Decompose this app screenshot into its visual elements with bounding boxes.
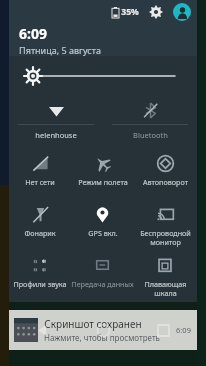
button[interactable]: Автоповорот — [134, 148, 197, 199]
button[interactable]: Home — [77, 310, 129, 350]
button[interactable]: Recents — [129, 310, 197, 350]
staticText: Нет сети — [25, 177, 55, 187]
staticText: helenhouse — [35, 130, 77, 140]
staticText: Нажмите, чтобы просмотреть — [44, 332, 160, 343]
staticText: Фонарик — [24, 228, 56, 238]
staticText: Передача данных — [71, 279, 134, 289]
staticText: Bluetooth — [133, 130, 168, 140]
button[interactable]: Settings — [148, 4, 164, 20]
staticText: Профили звука — [13, 279, 67, 289]
staticText: Режим полета — [78, 177, 128, 187]
button[interactable]: Back — [9, 310, 77, 350]
button[interactable]: User — [173, 3, 191, 21]
button[interactable]: Беспроводной монитор — [134, 199, 197, 250]
button[interactable]: Фонарик — [9, 199, 71, 250]
staticText: Беспроводной монитор — [140, 228, 191, 247]
staticText: GPS вкл. — [88, 228, 118, 238]
button[interactable]: Режим полета — [71, 148, 134, 199]
staticText: 6:09 — [19, 24, 47, 43]
button[interactable]: helenhouse — [9, 96, 103, 148]
staticText: 35% — [121, 6, 139, 18]
button[interactable]: Плавающая шкала — [134, 250, 197, 301]
button[interactable]: GPS вкл. — [71, 199, 134, 250]
button[interactable]: Brightness — [9, 56, 197, 96]
staticText: 6:09 — [176, 325, 191, 335]
button[interactable]: Нет сети — [9, 148, 71, 199]
button[interactable]: Скриншот сохранен — [9, 310, 197, 350]
button[interactable]: Передача данных — [71, 250, 134, 301]
button[interactable]: Bluetooth — [103, 96, 197, 148]
staticText: Пятница, 5 августа — [19, 44, 101, 56]
staticText: Автоповорот — [143, 177, 188, 187]
button[interactable]: Профили звука — [9, 250, 71, 301]
staticText: Плавающая шкала — [134, 279, 197, 298]
staticText: Скриншот сохранен — [44, 317, 142, 331]
